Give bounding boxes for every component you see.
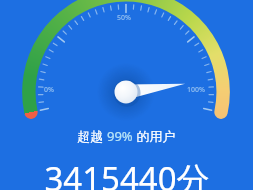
staticText: 超越 — [77, 127, 107, 145]
staticText: 0% — [44, 85, 54, 95]
staticText: 50% — [117, 13, 131, 23]
staticText: 100% — [187, 85, 205, 95]
staticText: 3415440分 — [44, 156, 210, 190]
staticText: 99% — [107, 127, 133, 145]
staticText: 的用户 — [133, 127, 176, 145]
